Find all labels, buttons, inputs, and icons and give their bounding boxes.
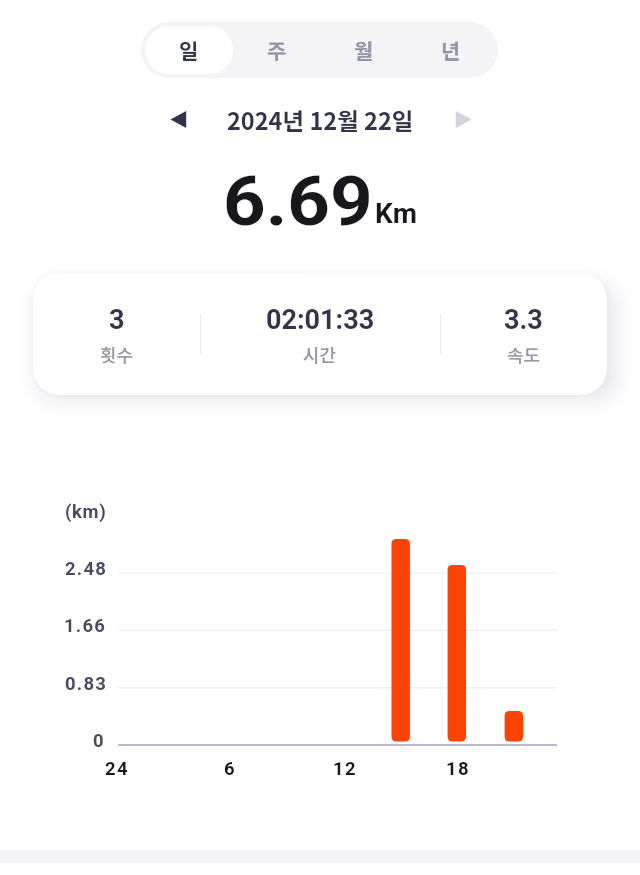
staticText: 3.3 [504,304,543,336]
staticText: 0.83 [65,673,108,695]
staticText: 1.66 [64,615,107,637]
staticText: Km [375,197,417,230]
staticText: 2024년 12월 22일 [227,103,414,137]
staticText: 월 [354,35,374,65]
staticText: 6 [224,758,235,780]
button[interactable]: 주 [233,26,320,74]
button[interactable]: 3 [33,273,200,395]
staticText: 년 [441,35,461,65]
button[interactable]: 월 [320,26,407,74]
staticText: 12 [333,758,357,780]
staticText: 주 [267,35,287,65]
button[interactable]: 년 [407,26,494,74]
button[interactable]: Previous day [157,97,201,141]
button[interactable]: 02:01:33 [200,273,440,395]
staticText: 24 [105,758,129,780]
staticText: 일 [179,35,199,65]
staticText: 속도 [507,341,541,367]
button[interactable]: Next day [441,97,485,141]
button[interactable]: 일 [145,26,233,74]
staticText: 시간 [303,341,337,367]
staticText: 18 [446,758,470,780]
staticText: 0 [93,730,104,752]
staticText: 6.69 [223,161,373,242]
staticText: 02:01:33 [266,304,375,336]
staticText: (km) [65,501,107,523]
staticText: 3 [109,304,125,336]
staticText: 횟수 [100,341,134,367]
staticText: 2.48 [65,558,108,580]
button[interactable]: 3.3 [440,273,607,395]
